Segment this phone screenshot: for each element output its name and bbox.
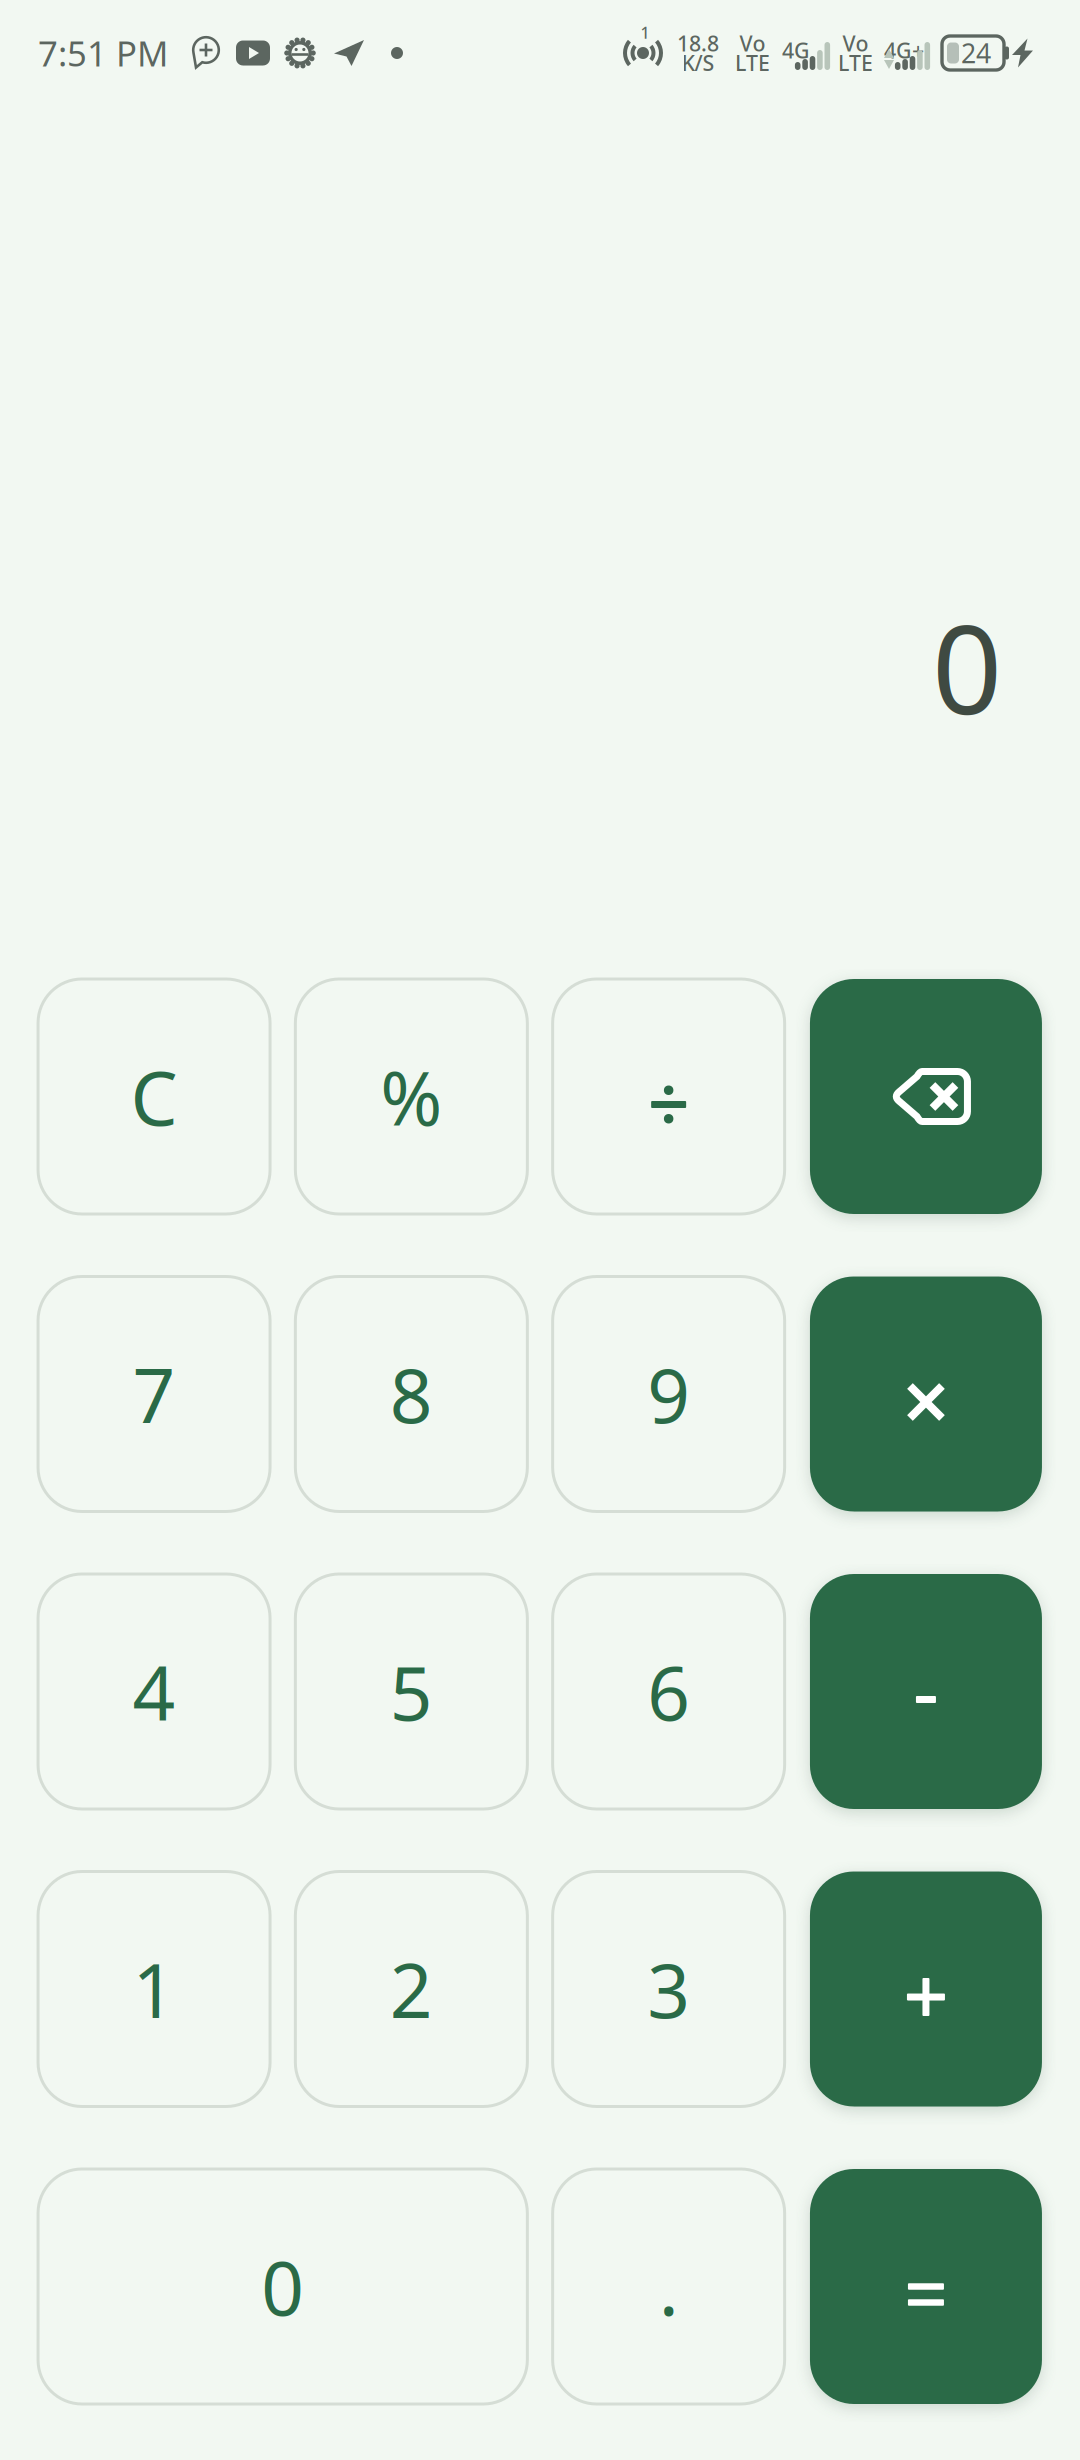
staticText: Vo	[739, 29, 765, 57]
staticText: 24	[961, 35, 991, 71]
staticText: 1	[133, 1939, 176, 2039]
staticText: 6	[647, 1642, 690, 1741]
button[interactable]: .	[553, 2169, 785, 2404]
button[interactable]: %	[295, 979, 527, 1214]
staticText: 5	[390, 1642, 433, 1741]
staticText: 4G	[782, 36, 810, 64]
staticText: 7:51 PM	[38, 30, 168, 76]
staticText: 4G+	[884, 36, 924, 64]
button[interactable]	[553, 979, 785, 1214]
staticText: 7	[133, 1344, 176, 1444]
staticText: Vo	[842, 29, 868, 57]
button[interactable]: 0	[38, 2169, 527, 2404]
staticText: 4	[133, 1642, 176, 1741]
button[interactable]: Multiply	[810, 1276, 1042, 1511]
button[interactable]: Subtract	[810, 1574, 1042, 1809]
button[interactable]: 4	[38, 1574, 270, 1809]
button[interactable]: Add	[810, 1871, 1042, 2106]
staticText: 1	[640, 22, 649, 43]
staticText: 2	[390, 1939, 433, 2039]
staticText: K/S	[681, 48, 714, 77]
staticText: 8	[390, 1344, 433, 1444]
button[interactable]: 9	[553, 1276, 785, 1511]
button[interactable]: 7	[38, 1276, 270, 1511]
button[interactable]: C	[38, 979, 270, 1214]
button[interactable]: Equals	[810, 2169, 1042, 2404]
staticText: 3	[647, 1939, 690, 2039]
staticText: 18.8	[677, 29, 719, 57]
staticText: C	[131, 1047, 178, 1146]
staticText: %	[380, 1047, 442, 1146]
staticText: 0	[932, 585, 1002, 748]
button[interactable]: 5	[295, 1574, 527, 1809]
staticText: LTE	[838, 48, 873, 77]
staticText: LTE	[735, 48, 770, 77]
staticText: 0	[261, 2237, 304, 2336]
button[interactable]: 6	[553, 1574, 785, 1809]
staticText: .	[659, 2237, 679, 2336]
staticText: 9	[647, 1344, 690, 1444]
button[interactable]: 2	[295, 1871, 527, 2106]
button[interactable]: 1	[38, 1871, 270, 2106]
button[interactable]: Backspace	[810, 979, 1042, 1214]
button[interactable]: 8	[295, 1276, 527, 1511]
button[interactable]: 3	[553, 1871, 785, 2106]
